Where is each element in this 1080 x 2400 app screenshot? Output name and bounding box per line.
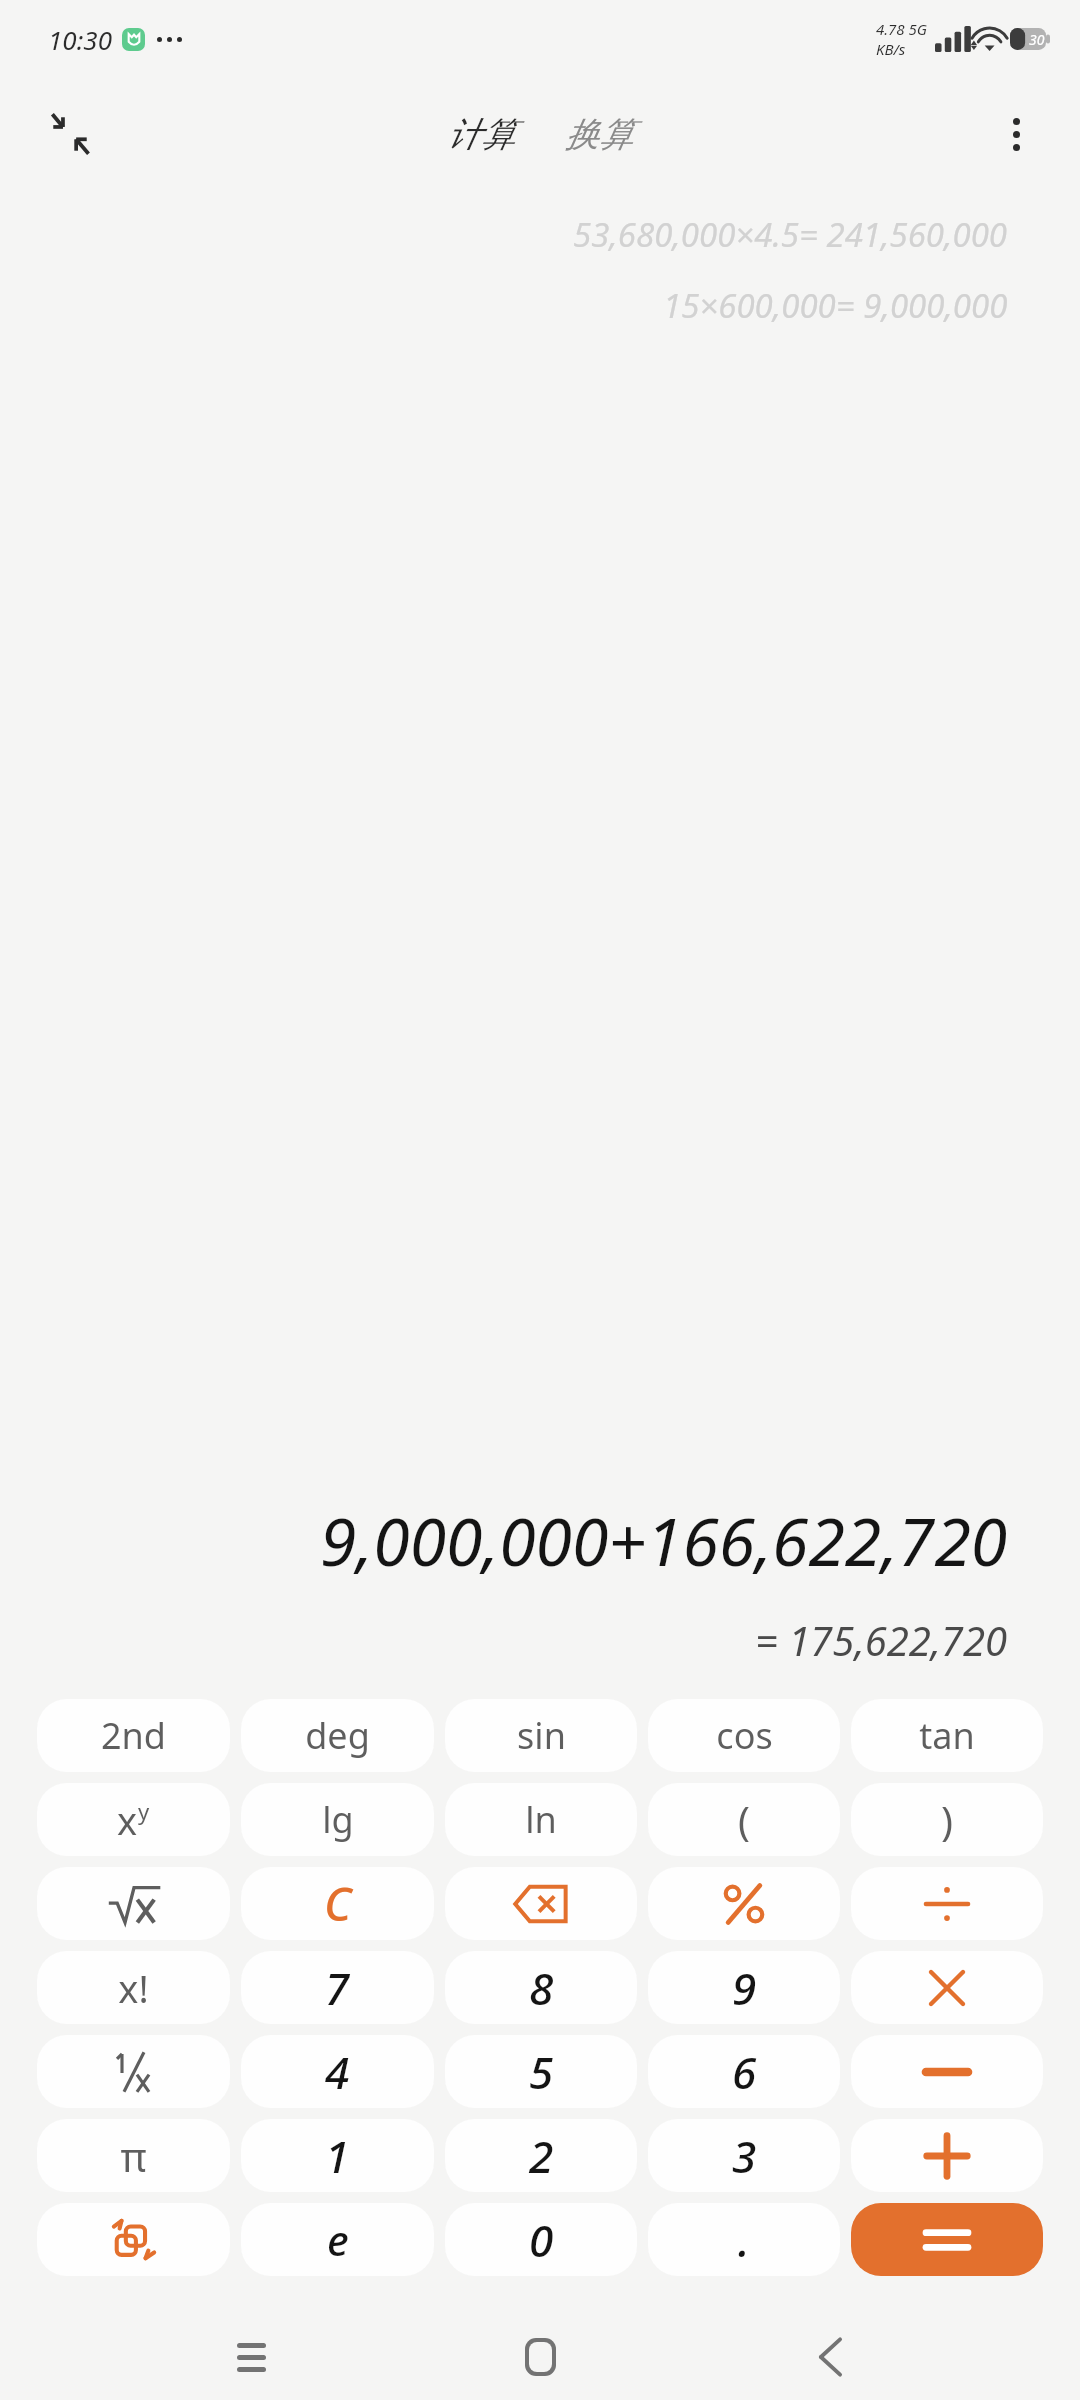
staticText: KB/s (876, 39, 906, 59)
staticText: 9 (732, 1958, 757, 2018)
staticText: 2 (529, 2126, 554, 2186)
staticText: tan (919, 1711, 975, 1760)
button[interactable]: 3 (648, 2119, 840, 2192)
button[interactable]: . (648, 2203, 840, 2276)
button[interactable]: 计算 (441, 107, 521, 162)
button[interactable]: tan (851, 1699, 1043, 1772)
button[interactable]: x to the power of y (37, 1783, 230, 1856)
button[interactable]: Reciprocal (37, 2035, 230, 2108)
staticText: y (138, 1796, 150, 1826)
button[interactable]: 9 (648, 1951, 840, 2024)
staticText: deg (305, 1711, 370, 1760)
staticText: lg (322, 1795, 354, 1844)
staticText: ( (738, 1793, 750, 1847)
staticText: 4 (325, 2042, 350, 2102)
button[interactable]: π (37, 2119, 230, 2192)
staticText: 10:30 (48, 22, 112, 57)
button[interactable]: 15×600,000= 9,000,000 (663, 283, 1008, 328)
button[interactable]: Divide (851, 1867, 1043, 1940)
staticText: 0 (529, 2210, 554, 2270)
button[interactable]: Back (791, 2318, 869, 2396)
staticText: sin (517, 1711, 566, 1760)
button[interactable]: 7 (241, 1951, 434, 2024)
button[interactable]: Convert (37, 2203, 230, 2276)
button[interactable]: 6 (648, 2035, 840, 2108)
button[interactable]: 1 (241, 2119, 434, 2192)
button[interactable]: Multiply (851, 1951, 1043, 2024)
button[interactable]: ( (648, 1783, 840, 1856)
staticText: 9,000,000+166,622,720 (320, 1495, 1008, 1585)
button[interactable]: 53,680,000×4.5= 241,560,000 (573, 212, 1008, 257)
staticText: 4.78 5G (876, 19, 927, 39)
staticText: ) (941, 1793, 953, 1847)
staticText: = 175,622,720 (755, 1613, 1008, 1667)
button[interactable]: 2nd (37, 1699, 230, 1772)
button[interactable]: Percent (648, 1867, 840, 1940)
staticText: 3 (732, 2126, 757, 2186)
staticText: C (324, 1872, 352, 1935)
staticText: 8 (529, 1958, 554, 2018)
staticText: 计算 (447, 113, 515, 156)
button[interactable]: Square root (37, 1867, 230, 1940)
button[interactable]: Plus (851, 2119, 1043, 2192)
button[interactable]: Home (501, 2318, 579, 2396)
staticText: e (327, 2211, 349, 2268)
button[interactable]: Collapse (42, 106, 98, 162)
button[interactable]: C (241, 1867, 434, 1940)
button[interactable]: 4 (241, 2035, 434, 2108)
button[interactable]: Equals (851, 2203, 1043, 2276)
button[interactable]: deg (241, 1699, 434, 1772)
staticText: x! (118, 1962, 149, 2014)
button[interactable]: e (241, 2203, 434, 2276)
button[interactable]: sin (445, 1699, 637, 1772)
button[interactable]: x! (37, 1951, 230, 2024)
staticText: 5 (529, 2042, 554, 2102)
button[interactable]: Minus (851, 2035, 1043, 2108)
button[interactable]: Recent apps (212, 2318, 290, 2396)
button[interactable]: More options (988, 106, 1044, 162)
button[interactable]: ) (851, 1783, 1043, 1856)
staticText: π (120, 2129, 147, 2183)
staticText: 1 (325, 2126, 350, 2186)
button[interactable]: 5 (445, 2035, 637, 2108)
staticText: cos (716, 1711, 773, 1760)
staticText: 2nd (101, 1711, 166, 1760)
staticText: . (738, 2210, 750, 2270)
staticText: 7 (325, 1958, 350, 2018)
button[interactable]: cos (648, 1699, 840, 1772)
staticText: 30 (1029, 30, 1045, 49)
staticText: ln (525, 1795, 557, 1844)
button[interactable]: ln (445, 1783, 637, 1856)
button[interactable]: 换算 (559, 107, 639, 162)
button[interactable]: 2 (445, 2119, 637, 2192)
button[interactable]: lg (241, 1783, 434, 1856)
staticText: 换算 (565, 113, 633, 156)
staticText: 6 (732, 2042, 757, 2102)
button[interactable]: 8 (445, 1951, 637, 2024)
staticText: x (117, 1794, 138, 1846)
button[interactable]: Delete (445, 1867, 637, 1940)
button[interactable]: 0 (445, 2203, 637, 2276)
